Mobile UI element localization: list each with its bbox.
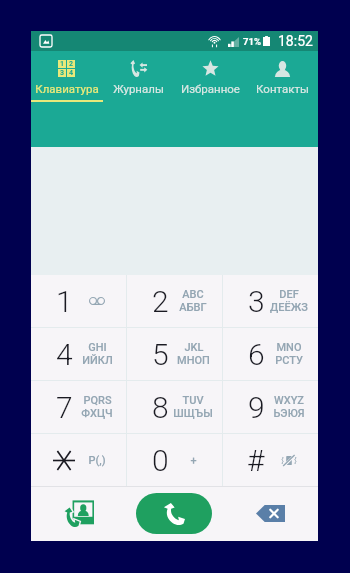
staticText: 4 — [56, 337, 73, 372]
staticText: # — [247, 443, 265, 478]
staticText: 2 — [152, 284, 169, 319]
button[interactable]: 6 — [223, 328, 318, 380]
staticText: РСТУ — [275, 354, 303, 367]
staticText: PQRS — [83, 394, 112, 407]
staticText: P(,) — [88, 454, 106, 467]
staticText: ИЙКЛ — [82, 354, 113, 367]
button[interactable]: 9 — [223, 381, 318, 433]
staticText: 7 — [56, 390, 73, 425]
button[interactable]: Call — [136, 493, 212, 534]
button[interactable]: 3 — [223, 275, 318, 327]
button[interactable]: 2 — [127, 275, 222, 327]
staticText: 0 — [152, 443, 169, 478]
staticText: 2 — [69, 60, 74, 68]
button[interactable]: # — [223, 434, 318, 486]
button[interactable]: Журналы — [102, 51, 174, 102]
staticText: 18:52 — [278, 33, 313, 49]
staticText: MNO — [276, 341, 302, 354]
staticText: 4 — [69, 69, 74, 77]
staticText: ABC — [182, 288, 204, 301]
button[interactable]: 1 — [31, 51, 102, 102]
staticText: + — [190, 454, 197, 467]
staticText: 1 — [60, 60, 65, 68]
staticText: Избранное — [181, 82, 240, 95]
staticText: 8 — [152, 390, 169, 425]
staticText: TUV — [182, 394, 204, 407]
button[interactable]: Контакты — [246, 51, 318, 102]
staticText: DEF — [279, 288, 299, 301]
button[interactable]: Add contact — [31, 486, 126, 541]
staticText: 1 — [56, 284, 73, 319]
staticText: Журналы — [113, 82, 164, 95]
staticText: ЬЭЮЯ — [273, 407, 305, 420]
staticText: ШЩЪЫ — [173, 407, 213, 420]
button[interactable]: 4 — [31, 328, 126, 380]
staticText: АБВГ — [179, 301, 207, 314]
staticText: 5 — [152, 337, 169, 372]
staticText: ФХЦЧ — [81, 407, 113, 420]
staticText: 71% — [243, 36, 261, 47]
button[interactable]: 8 — [127, 381, 222, 433]
button[interactable]: 0 — [127, 434, 222, 486]
staticText: 6 — [248, 337, 265, 372]
staticText: ДЕЁЖЗ — [270, 301, 308, 314]
staticText: Клавиатура — [35, 82, 99, 95]
button[interactable]: 1 — [31, 275, 126, 327]
staticText: Контакты — [256, 82, 309, 95]
staticText: 3 — [248, 284, 265, 319]
staticText: 9 — [248, 390, 265, 425]
staticText: GHI — [88, 341, 107, 354]
button[interactable]: Избранное — [174, 51, 246, 102]
staticText: WXYZ — [274, 394, 304, 407]
button[interactable]: P(,) — [31, 434, 126, 486]
staticText: 3 — [60, 69, 65, 77]
staticText: JKL — [184, 341, 204, 354]
button[interactable]: 5 — [127, 328, 222, 380]
button[interactable]: 7 — [31, 381, 126, 433]
button[interactable]: Backspace — [222, 486, 318, 541]
staticText: МНОП — [177, 354, 210, 367]
